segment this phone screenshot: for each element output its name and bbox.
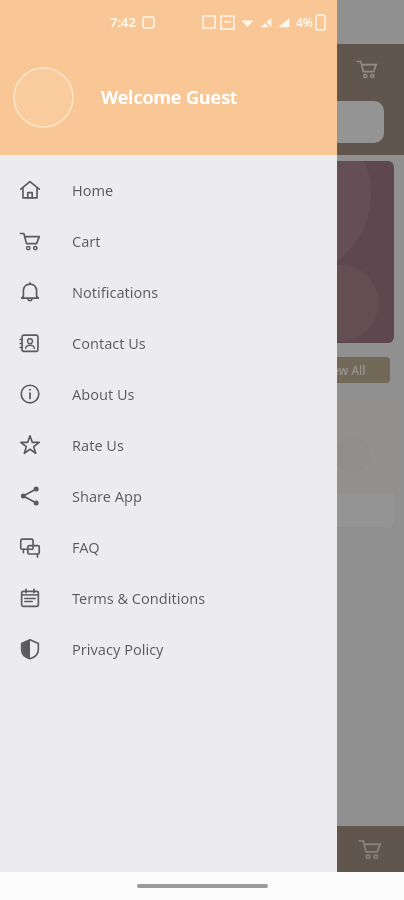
staticText: the year! [32,273,82,289]
staticText: Cart [72,231,101,251]
staticText: Rate Us [72,435,124,455]
button[interactable]: Traditional [244,393,394,527]
button[interactable]: Privacy Policy [0,623,337,674]
staticText: FAQ [72,537,100,557]
button[interactable]: View All [298,357,390,383]
staticText: Privacy Policy [72,639,164,659]
staticText: CAKES [32,232,126,273]
button[interactable]: Notifications [0,266,337,317]
button[interactable]: FAQ [0,521,337,572]
staticText: Share App [72,486,142,506]
button[interactable] [13,67,74,128]
staticText: Notifications [72,282,159,302]
staticText: 4% [296,14,313,30]
button[interactable]: About Us [0,368,337,419]
staticText: View All [322,362,366,378]
staticText: About Us [72,384,135,404]
staticText: Home [72,180,114,200]
button[interactable]: Share App [0,470,337,521]
staticText: Contact Us [72,333,146,353]
button[interactable] [20,101,384,143]
button[interactable]: Contact Us [0,317,337,368]
other: Cart [356,58,378,80]
staticText: 7:42 [110,13,136,31]
staticText: Welcome Guest [101,85,238,110]
staticText: Terms & Conditions [72,588,206,608]
button[interactable]: Home [0,164,337,215]
button[interactable]: Cart [0,215,337,266]
other: Delivery [358,837,382,861]
button[interactable]: Terms & Conditions [0,572,337,623]
button[interactable]: Rate Us [0,419,337,470]
